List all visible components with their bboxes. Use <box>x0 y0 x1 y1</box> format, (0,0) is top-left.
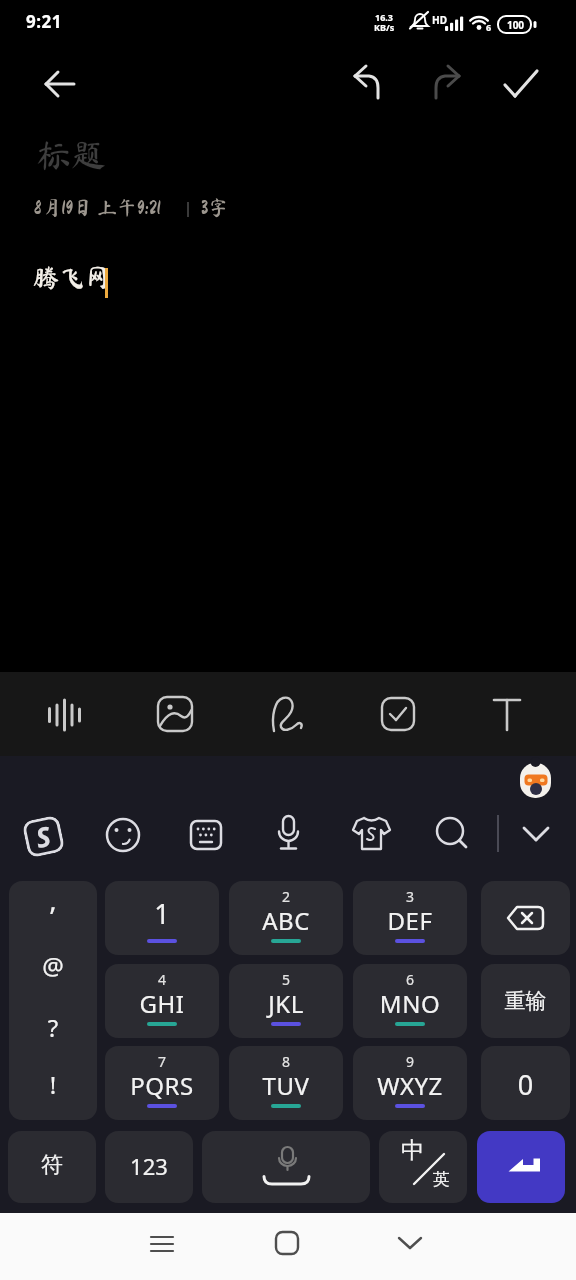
button[interactable]: 8 <box>229 1046 343 1120</box>
button[interactable] <box>342 60 390 108</box>
staticText: DEF <box>353 904 467 937</box>
staticText: 7 <box>105 1052 219 1071</box>
staticText: HD <box>432 13 447 27</box>
button[interactable]: 0 <box>481 1046 570 1120</box>
button[interactable]: 123 <box>105 1131 193 1203</box>
button[interactable]: 9 <box>353 1046 467 1120</box>
button[interactable] <box>36 60 84 108</box>
staticText: 3字 <box>201 197 229 217</box>
button[interactable] <box>264 810 312 858</box>
staticText: 16.3 <box>375 11 393 23</box>
button[interactable] <box>99 810 147 858</box>
staticText: 8 <box>229 1052 343 1071</box>
staticText: S <box>32 817 55 856</box>
button[interactable]: 4 <box>105 964 219 1038</box>
staticText: ABC <box>229 904 343 937</box>
button[interactable] <box>512 810 560 858</box>
staticText: @ <box>9 949 97 982</box>
staticText: 标题 <box>36 137 107 172</box>
button[interactable] <box>477 1131 565 1203</box>
staticText: MNO <box>353 987 467 1020</box>
staticText: 100 <box>500 18 531 32</box>
button[interactable]: 2 <box>229 881 343 955</box>
staticText: ? <box>9 1011 97 1044</box>
staticText: 9:21 <box>26 10 62 33</box>
button[interactable]: 1 <box>105 881 219 955</box>
button[interactable]: 3 <box>353 881 467 955</box>
button[interactable]: 符 <box>8 1131 96 1203</box>
button[interactable] <box>202 1131 370 1203</box>
staticText: 英 <box>433 1169 450 1190</box>
staticText: PQRS <box>105 1069 219 1102</box>
staticText: GHI <box>105 987 219 1020</box>
staticText: 123 <box>105 1151 193 1181</box>
button[interactable] <box>384 1217 436 1269</box>
staticText: TUV <box>229 1069 343 1102</box>
staticText: 3 <box>353 887 467 906</box>
button[interactable] <box>38 686 94 742</box>
staticText: 0 <box>481 1066 570 1103</box>
staticText: 中 <box>401 1136 424 1165</box>
staticText: 符 <box>8 1151 96 1179</box>
button[interactable] <box>347 810 395 858</box>
staticText: 1 <box>105 895 219 932</box>
staticText: 6 <box>486 21 492 33</box>
button[interactable]: 中 <box>379 1131 467 1203</box>
staticText: 重输 <box>481 988 570 1014</box>
button[interactable] <box>147 686 203 742</box>
staticText: 6 <box>353 970 467 989</box>
staticText: KB/s <box>374 21 395 33</box>
staticText: 5 <box>229 970 343 989</box>
button[interactable]: , <box>9 881 97 1120</box>
button[interactable] <box>429 810 477 858</box>
staticText: WXYZ <box>353 1069 467 1102</box>
button[interactable]: 5 <box>229 964 343 1038</box>
button[interactable]: 7 <box>105 1046 219 1120</box>
staticText: , <box>9 881 97 918</box>
button[interactable] <box>136 1217 188 1269</box>
button[interactable]: S <box>22 815 65 858</box>
button[interactable] <box>259 686 315 742</box>
staticText: JKL <box>229 987 343 1020</box>
button[interactable] <box>261 1217 313 1269</box>
button[interactable] <box>520 763 551 798</box>
button[interactable] <box>497 60 545 108</box>
staticText: 8月19日 上午9:21 <box>34 197 161 217</box>
staticText: 9 <box>353 1052 467 1071</box>
staticText: ! <box>9 1068 97 1101</box>
button[interactable] <box>370 686 426 742</box>
button[interactable] <box>481 881 570 955</box>
staticText: 腾飞网 <box>33 264 112 290</box>
button[interactable]: 6 <box>353 964 467 1038</box>
staticText: 2 <box>229 887 343 906</box>
button[interactable] <box>422 60 470 108</box>
button[interactable]: 重输 <box>481 964 570 1038</box>
button[interactable] <box>479 686 535 742</box>
staticText: 4 <box>105 970 219 989</box>
button[interactable] <box>182 810 230 858</box>
